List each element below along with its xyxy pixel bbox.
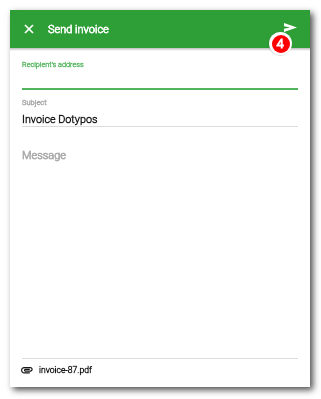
button[interactable]: [20, 55, 300, 89]
staticText: Message: [22, 149, 67, 162]
button[interactable]: Send: [276, 13, 304, 41]
staticText: 4: [276, 36, 284, 51]
staticText: Send invoice: [48, 23, 109, 36]
staticText: Invoice Dotypos: [22, 113, 98, 126]
button[interactable]: invoice-87.pdf: [10, 360, 310, 386]
staticText: Send invoice: [48, 23, 109, 36]
staticText: Recipient's address: [22, 60, 84, 69]
staticText: Subject: [22, 98, 47, 107]
staticText: Message: [22, 149, 67, 162]
button[interactable]: Close: [15, 15, 43, 43]
staticText: Recipient's address: [22, 60, 84, 69]
staticText: invoice-87.pdf: [39, 365, 92, 375]
staticText: Subject: [22, 98, 47, 107]
button[interactable]: 4 recipients: [269, 32, 292, 55]
staticText: 4: [276, 36, 284, 51]
staticText: Invoice Dotypos: [22, 113, 98, 126]
staticText: invoice-87.pdf: [39, 365, 92, 375]
